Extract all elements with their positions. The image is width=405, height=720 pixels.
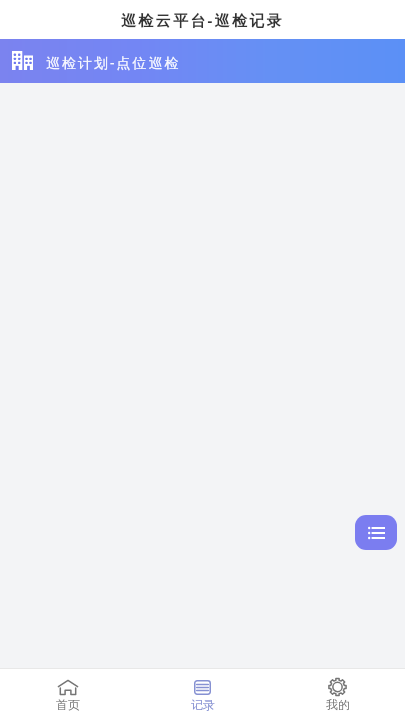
staticText: 巡检云平台-巡检记录 xyxy=(121,10,284,30)
staticText: 我的 xyxy=(326,697,350,712)
button[interactable]: 首页 xyxy=(0,669,135,720)
button[interactable]: 列表 xyxy=(355,515,397,550)
button[interactable]: 巡检计划-点位巡检 xyxy=(0,39,405,83)
staticText: 记录 xyxy=(191,697,215,712)
staticText: 首页 xyxy=(56,697,80,712)
button[interactable]: 我的 xyxy=(270,669,405,720)
button[interactable]: 记录 xyxy=(135,669,270,720)
staticText: 巡检计划-点位巡检 xyxy=(46,53,181,72)
